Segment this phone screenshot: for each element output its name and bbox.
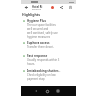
button[interactable]: Hygiene Plus [22, 18, 74, 40]
staticText: well secured and [27, 27, 49, 31]
button[interactable]: Euphora access [22, 40, 74, 53]
button[interactable]: Fast response [22, 53, 74, 68]
staticText: Instabooking shutter... [27, 69, 61, 73]
staticText: Check eligibility on low [27, 73, 56, 77]
staticText: Transfer there descri- [27, 45, 54, 49]
staticText: Bandung [32, 8, 41, 11]
staticText: hygiene measures [27, 35, 51, 39]
staticText: hours. [27, 62, 36, 66]
button[interactable]: Home [44, 88, 50, 94]
staticText: Fast response [27, 54, 48, 58]
button[interactable]: Back [24, 5, 29, 10]
button[interactable]: Back [33, 88, 39, 94]
staticText: The our space facilities [27, 23, 56, 27]
button[interactable]: Favorite [50, 5, 55, 10]
staticText: Hygiene Plus [27, 19, 46, 23]
staticText: payment etap [27, 77, 45, 81]
staticText: Euphora access [27, 41, 50, 45]
button[interactable]: Instabooking shutter... [22, 68, 74, 82]
button[interactable]: Save [68, 5, 73, 10]
button[interactable]: Recents [55, 88, 61, 94]
staticText: well sanitised, safely use [27, 31, 58, 35]
staticText: Highlights [22, 12, 41, 17]
staticText: Hotel Ri [32, 5, 43, 8]
button[interactable]: Share [59, 5, 64, 10]
staticText: Usually responds within 3 [27, 58, 60, 62]
